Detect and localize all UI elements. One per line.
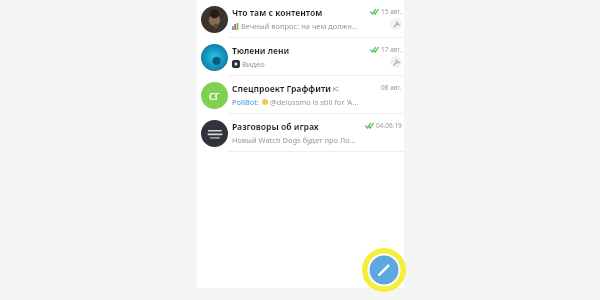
staticText: 08 авг. — [381, 83, 402, 92]
staticText: Разговоры об играх — [232, 121, 319, 133]
staticText: @delossmo is still for 'Ara'. /r… — [270, 97, 359, 107]
staticText: 15 авг. — [381, 7, 402, 16]
button[interactable]: Что там с контентом — [197, 0, 404, 37]
staticText: Видео — [242, 59, 265, 69]
staticText: Тюлени лени — [232, 45, 290, 57]
button[interactable]: СГ — [197, 76, 404, 113]
staticText: СГ — [209, 90, 220, 102]
staticText: 17 авг. — [381, 45, 402, 54]
staticText: Спецпроект Граффити — [232, 83, 331, 95]
staticText: 04.06.19 — [376, 121, 402, 130]
staticText: Что там с контентом — [232, 7, 323, 19]
staticText: Новый Watch Dogs будет про Лондон,… — [232, 135, 359, 145]
button[interactable]: Compose new message — [362, 248, 406, 292]
button[interactable]: Тюлени лени — [197, 38, 404, 75]
staticText: Вечный вопрос: на чем должна… — [241, 21, 359, 31]
button[interactable]: Разговоры об играх — [197, 114, 404, 151]
staticText: PollBot: — [232, 97, 260, 107]
